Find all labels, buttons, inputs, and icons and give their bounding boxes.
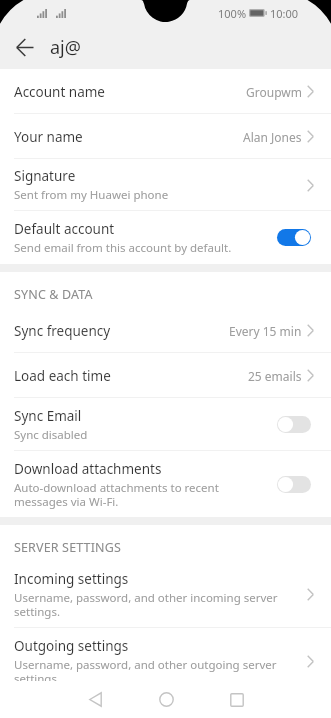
staticText: Default account — [14, 220, 115, 238]
staticText: Signature — [14, 167, 76, 185]
staticText: Your name — [14, 128, 83, 146]
button[interactable]: Switch off — [277, 416, 311, 433]
staticText: Sync frequency — [14, 322, 111, 340]
button[interactable]: Load each time — [0, 353, 331, 398]
button[interactable]: Default account — [0, 211, 331, 264]
staticText: SERVER SETTINGS — [14, 539, 121, 556]
button[interactable]: Your name — [0, 114, 331, 159]
staticText: Download attachments — [14, 460, 162, 478]
staticText: Incoming settings — [14, 570, 129, 588]
staticText: Username, password, and other outgoing s… — [14, 657, 280, 686]
staticText: SYNC & DATA — [14, 286, 93, 303]
button[interactable]: Outgoing settings — [0, 628, 331, 695]
staticText: Sync Email — [14, 407, 82, 425]
staticText: Auto-download attachments to recent mess… — [14, 480, 236, 509]
staticText: Outgoing settings — [14, 637, 129, 655]
button[interactable]: Account name — [0, 69, 331, 114]
staticText: Sync disabled — [14, 427, 88, 443]
staticText: Account name — [14, 83, 105, 101]
staticText: Groupwm — [246, 84, 302, 100]
staticText: Load each time — [14, 367, 111, 385]
button[interactable]: Download attachments — [0, 451, 331, 517]
button[interactable]: Recent apps — [213, 681, 261, 718]
staticText: 10:00 — [270, 6, 299, 21]
button[interactable]: Signature — [0, 159, 331, 211]
button[interactable]: Switch off — [277, 476, 311, 493]
button[interactable]: Sync frequency — [0, 308, 331, 353]
button[interactable]: Home — [142, 681, 190, 718]
button[interactable]: Incoming settings — [0, 561, 331, 628]
staticText: Send email from this account by default. — [14, 240, 232, 256]
staticText: 25 emails — [248, 368, 302, 384]
button[interactable]: Back — [71, 681, 119, 718]
staticText: Alan Jones — [243, 129, 302, 145]
staticText: Sent from my Huawei phone — [14, 187, 169, 203]
staticText: Every 15 min — [229, 323, 302, 339]
button[interactable]: Back — [0, 26, 50, 69]
button[interactable]: Switch on — [277, 229, 311, 246]
staticText: aj@ — [50, 35, 81, 60]
staticText: Username, password, and other incoming s… — [14, 590, 280, 619]
button[interactable]: Sync Email — [0, 398, 331, 451]
staticText: 100% — [218, 6, 247, 21]
